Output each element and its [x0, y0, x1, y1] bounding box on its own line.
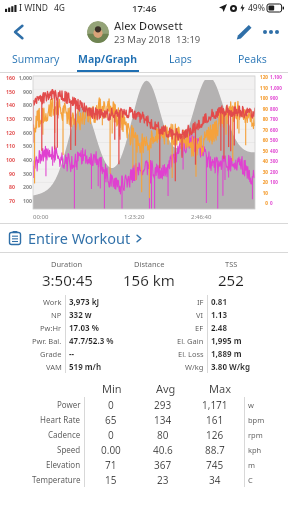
staticText: 0: [270, 200, 287, 206]
staticText: 293: [154, 398, 172, 412]
staticText: 0: [108, 428, 114, 442]
staticText: 71: [105, 458, 117, 472]
staticText: 900: [16, 88, 32, 95]
staticText: 1,171: [202, 398, 228, 412]
staticText: 200: [16, 183, 32, 190]
staticText: 23 May 2018: [114, 33, 171, 46]
staticText: 300: [270, 158, 287, 164]
staticText: 2:46:40: [191, 213, 212, 221]
staticText: 745: [206, 458, 224, 472]
staticText: 3:50:45: [42, 270, 93, 290]
staticText: rpm: [248, 430, 263, 440]
button[interactable]: Summary: [0, 48, 72, 72]
staticText: Laps: [169, 52, 192, 66]
staticText: --: [69, 348, 75, 359]
staticText: 3,973 kJ: [69, 296, 100, 307]
staticText: Elevation: [46, 459, 81, 470]
staticText: 00:00: [33, 213, 49, 221]
staticText: NP: [51, 310, 62, 320]
staticText: 161: [206, 413, 224, 427]
staticText: 90: [257, 106, 268, 112]
staticText: 400: [270, 148, 287, 154]
button[interactable]: Entire Workout: [0, 224, 288, 252]
staticText: bpm: [248, 415, 265, 425]
staticText: 49%: [248, 2, 265, 14]
staticText: Summary: [12, 52, 60, 66]
staticText: 0: [257, 200, 268, 206]
staticText: 700: [16, 115, 32, 122]
button[interactable]: Laps: [144, 48, 216, 72]
staticText: 17:46: [132, 2, 157, 15]
staticText: 800: [16, 101, 32, 108]
staticText: Peaks: [238, 52, 267, 66]
staticText: 252: [218, 270, 244, 290]
staticText: 126: [206, 428, 224, 442]
staticText: 110: [257, 85, 268, 91]
staticText: 110: [1, 142, 15, 149]
staticText: 90: [1, 170, 15, 177]
staticText: 1:23:20: [124, 213, 145, 221]
staticText: 70: [257, 127, 268, 133]
staticText: Temperature: [32, 474, 81, 485]
staticText: 70: [1, 197, 15, 204]
button[interactable]: Peaks: [216, 48, 288, 72]
staticText: Grade: [40, 349, 62, 359]
staticText: 160: [1, 74, 15, 81]
staticText: 700: [270, 116, 287, 122]
staticText: Work: [43, 297, 62, 307]
staticText: Pw:Hr: [40, 323, 62, 333]
staticText: 120: [1, 129, 15, 136]
staticText: 47.7/52.3 %: [69, 335, 114, 346]
staticText: El. Loss: [178, 349, 204, 359]
button[interactable]: More options: [258, 17, 283, 47]
staticText: C: [248, 475, 253, 485]
staticText: 130: [1, 115, 15, 122]
staticText: 1,889 m: [211, 348, 242, 359]
staticText: 600: [16, 129, 32, 136]
staticText: Cadence: [48, 429, 81, 440]
staticText: 156 km: [123, 270, 175, 290]
staticText: 50: [257, 148, 268, 154]
button[interactable]: Back: [4, 17, 34, 47]
staticText: Speed: [57, 444, 81, 455]
staticText: 40.6: [153, 443, 173, 457]
staticText: 10: [257, 190, 268, 196]
staticText: VI: [196, 310, 204, 320]
staticText: 100: [257, 95, 268, 101]
staticText: 300: [16, 170, 32, 177]
staticText: 519 m/h: [69, 361, 102, 372]
staticText: 13:19: [176, 33, 201, 46]
staticText: TSS: [225, 259, 238, 269]
staticText: kph: [248, 445, 262, 455]
staticText: 500: [270, 137, 287, 143]
staticText: 1,000: [16, 74, 32, 81]
staticText: IF: [197, 297, 204, 307]
staticText: Alex Dowsett: [114, 18, 183, 33]
staticText: 15: [105, 473, 117, 487]
staticText: 332 w: [69, 309, 92, 320]
staticText: 1.13: [211, 309, 227, 320]
button[interactable]: Edit: [230, 18, 258, 46]
staticText: w: [248, 400, 254, 410]
staticText: Heart Rate: [40, 414, 81, 425]
staticText: 17.03 %: [69, 322, 99, 333]
staticText: 367: [154, 458, 172, 472]
staticText: 60: [257, 137, 268, 143]
staticText: 80: [157, 428, 169, 442]
staticText: 1,000: [270, 85, 287, 91]
staticText: Min: [102, 381, 122, 396]
button[interactable]: Map/Graph: [72, 48, 144, 72]
staticText: Pwr. Bal.: [32, 336, 62, 346]
staticText: EF: [195, 323, 204, 333]
staticText: 2.48: [211, 322, 227, 333]
staticText: 1,100: [270, 74, 287, 80]
staticText: Duration: [51, 259, 83, 269]
staticText: Avg: [156, 381, 176, 396]
staticText: 0.00: [101, 443, 121, 457]
staticText: 100: [16, 197, 32, 204]
staticText: VAM: [46, 362, 62, 372]
staticText: 800: [270, 106, 287, 112]
staticText: 140: [1, 101, 15, 108]
staticText: Power: [57, 399, 81, 410]
staticText: 400: [16, 156, 32, 163]
